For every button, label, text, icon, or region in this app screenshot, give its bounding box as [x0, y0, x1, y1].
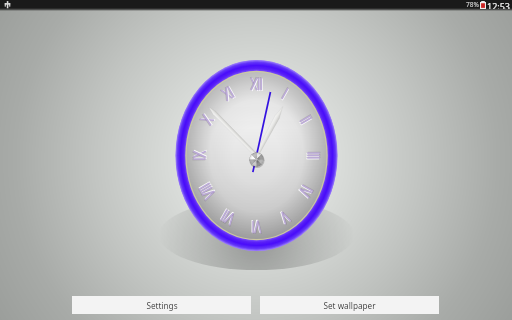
other: USB debugging — [4, 0, 11, 9]
staticText: 12:53 — [487, 0, 511, 9]
button[interactable]: Set wallpaper — [260, 296, 439, 314]
staticText: Settings — [146, 300, 178, 311]
staticText: Set wallpaper — [323, 300, 376, 311]
staticText: 78% — [466, 0, 479, 9]
button[interactable]: Settings — [72, 296, 251, 314]
